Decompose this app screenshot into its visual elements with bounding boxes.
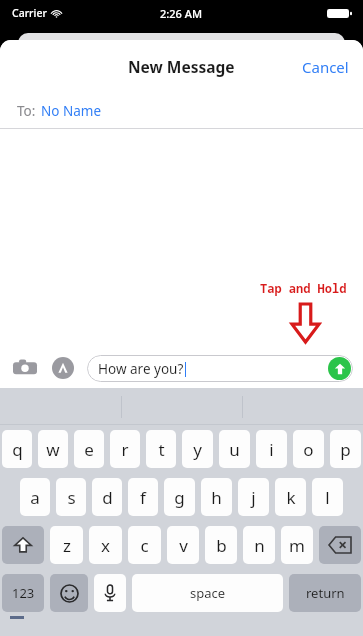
button[interactable]: x	[89, 526, 122, 564]
staticText: g	[174, 486, 185, 509]
button[interactable]: k	[275, 478, 306, 516]
button[interactable]: h	[201, 478, 232, 516]
staticText: 123	[12, 584, 35, 602]
button[interactable]: c	[128, 526, 161, 564]
staticText: To:	[17, 102, 36, 120]
button[interactable]: a	[20, 478, 50, 516]
button[interactable]: q	[2, 430, 32, 468]
staticText: b	[216, 534, 227, 557]
staticText: t	[158, 438, 165, 461]
button[interactable]: Send	[328, 357, 351, 380]
button[interactable]: b	[205, 526, 237, 564]
button[interactable]: s	[56, 478, 86, 516]
button[interactable]: r	[110, 430, 140, 468]
button[interactable]: Camera	[10, 353, 40, 383]
staticText: Cancel	[302, 57, 349, 77]
staticText: u	[229, 438, 240, 461]
staticText: x	[101, 534, 110, 557]
button[interactable]: Dictation	[94, 574, 126, 612]
staticText: How are you?	[98, 360, 184, 378]
button[interactable]: return	[289, 574, 361, 612]
button[interactable]: 123	[2, 574, 44, 612]
staticText: s	[67, 486, 76, 509]
staticText: space	[190, 584, 226, 602]
staticText: y	[193, 438, 202, 461]
button[interactable]: l	[312, 478, 343, 516]
staticText: c	[140, 534, 149, 557]
button[interactable]: Shift	[2, 526, 44, 564]
staticText: m	[289, 534, 305, 557]
staticText: 2:26 AM	[160, 6, 203, 21]
staticText: i	[269, 438, 274, 461]
staticText: j	[251, 486, 256, 509]
button[interactable]: To:	[0, 93, 363, 129]
staticText: d	[102, 486, 113, 509]
button[interactable]: m	[281, 526, 313, 564]
button[interactable]: Emoji	[50, 574, 88, 612]
staticText: r	[121, 438, 129, 461]
button[interactable]: e	[74, 430, 104, 468]
button[interactable]: d	[92, 478, 122, 516]
button[interactable]: j	[238, 478, 269, 516]
button[interactable]: f	[128, 478, 158, 516]
button[interactable]: t	[146, 430, 176, 468]
staticText: p	[340, 438, 351, 461]
button[interactable]: z	[50, 526, 83, 564]
staticText: q	[12, 438, 23, 461]
button[interactable]: o	[293, 430, 324, 468]
button[interactable]: i	[256, 430, 287, 468]
staticText: return	[306, 584, 345, 602]
button[interactable]: w	[38, 430, 68, 468]
button[interactable]: Apps	[48, 353, 78, 383]
button[interactable]: Cancel	[288, 47, 363, 87]
staticText: a	[30, 486, 40, 509]
staticText: z	[63, 534, 71, 557]
button[interactable]: n	[243, 526, 275, 564]
staticText: n	[254, 534, 265, 557]
button[interactable]: g	[164, 478, 195, 516]
staticText: Carrier	[12, 6, 47, 20]
staticText: No Name	[41, 102, 102, 120]
button[interactable]: space	[132, 574, 283, 612]
button[interactable]: p	[330, 430, 361, 468]
button[interactable]: y	[182, 430, 213, 468]
staticText: New Message	[128, 56, 235, 77]
staticText: o	[303, 438, 314, 461]
staticText: v	[179, 534, 188, 557]
staticText: k	[286, 486, 296, 509]
staticText: h	[211, 486, 222, 509]
button[interactable]: How are you?	[87, 355, 353, 382]
button[interactable]: Backspace	[319, 526, 361, 564]
staticText: f	[140, 486, 146, 509]
staticText: l	[325, 486, 330, 509]
staticText: e	[84, 438, 94, 461]
staticText: w	[46, 438, 60, 461]
staticText: Tap and Hold	[260, 280, 347, 296]
button[interactable]: u	[219, 430, 250, 468]
button[interactable]: v	[167, 526, 199, 564]
